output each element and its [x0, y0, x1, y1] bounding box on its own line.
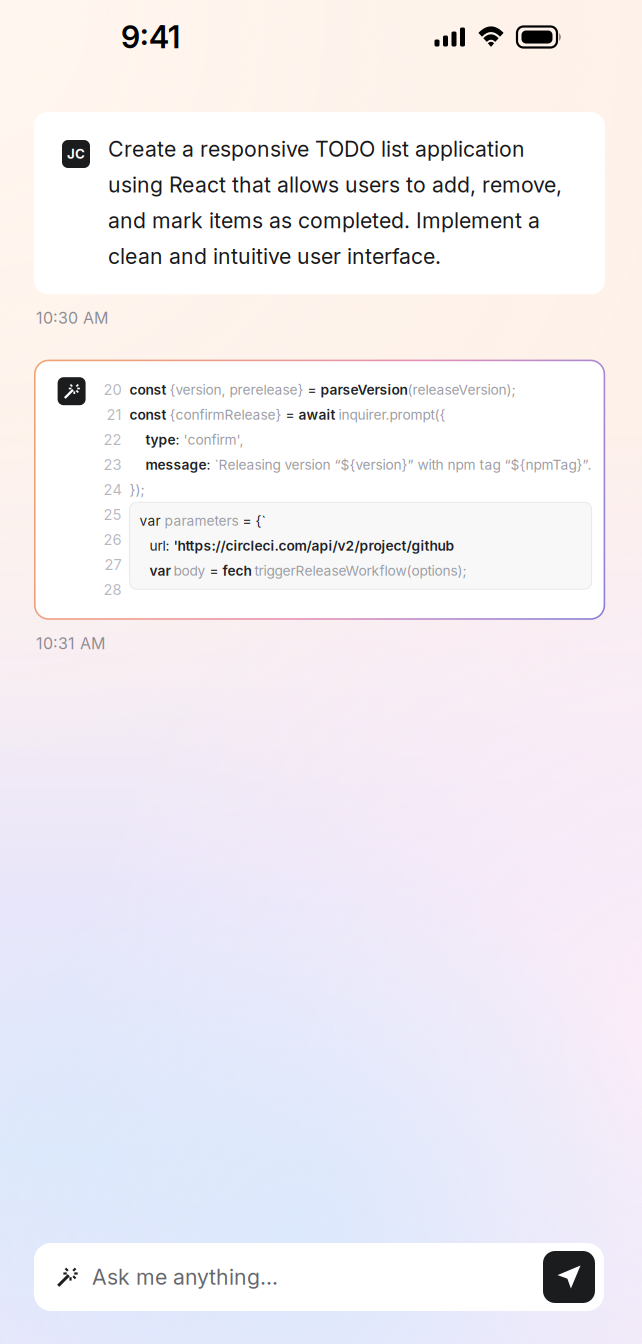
- staticText: parameters: [165, 512, 243, 529]
- staticText: var: [140, 512, 165, 529]
- staticText: const: [130, 381, 170, 398]
- staticText: 25: [104, 506, 122, 523]
- staticText: `Releasing version “${version}” with npm…: [215, 456, 592, 473]
- staticText: 'confirm',: [184, 431, 244, 448]
- staticText: JC: [67, 146, 85, 162]
- staticText: 9:41: [121, 18, 180, 55]
- staticText: 21: [107, 406, 122, 423]
- staticText: inquirer.prompt({: [339, 406, 446, 423]
- staticText: {confirmRelease}: [170, 406, 286, 423]
- staticText: const: [130, 406, 170, 423]
- staticText: 24: [104, 481, 122, 498]
- staticText: await: [299, 406, 339, 423]
- staticText: type: [146, 431, 176, 448]
- staticText: 10:30 AM: [36, 308, 108, 328]
- staticText: Create a responsive TODO list applicatio…: [108, 136, 562, 269]
- staticText: =: [308, 381, 321, 398]
- staticText: Ask me anything...: [92, 1264, 278, 1290]
- staticText: 10:31 AM: [36, 634, 105, 653]
- staticText: url: [150, 537, 166, 554]
- staticText: :: [166, 537, 174, 554]
- staticText: var: [150, 562, 174, 579]
- staticText: 27: [105, 556, 122, 573]
- staticText: triggerReleaseWorkflow(options);: [255, 562, 467, 579]
- staticText: =: [210, 562, 223, 579]
- button[interactable]: Send: [543, 1251, 595, 1303]
- staticText: message: [146, 456, 207, 473]
- staticText: 23: [104, 456, 122, 473]
- staticText: (releaseVersion);: [408, 381, 516, 398]
- staticText: 28: [104, 581, 122, 598]
- staticText: 26: [104, 531, 122, 548]
- staticText: :: [207, 456, 215, 473]
- staticText: 'https://circleci.com/api/v2/project/git…: [174, 537, 455, 554]
- staticText: =: [286, 406, 299, 423]
- staticText: {version, prerelease}: [170, 381, 308, 398]
- staticText: :: [176, 431, 184, 448]
- staticText: });: [130, 481, 145, 498]
- staticText: fech: [223, 562, 255, 579]
- staticText: body: [174, 562, 210, 579]
- staticText: 22: [104, 431, 122, 448]
- staticText: = {`: [243, 512, 266, 529]
- staticText: parseVersion: [321, 381, 408, 398]
- staticText: 20: [104, 381, 122, 398]
